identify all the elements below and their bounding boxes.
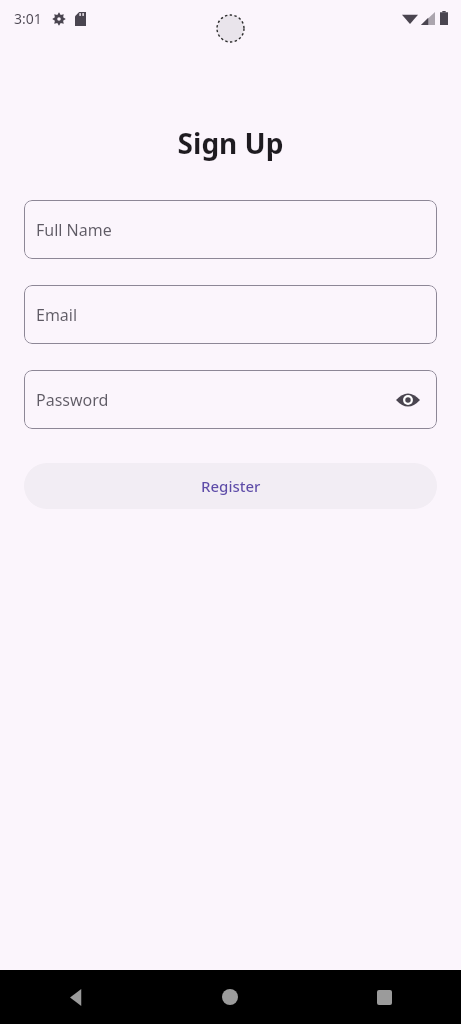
button[interactable]: Back [0,970,153,1024]
button[interactable]: Password [24,370,437,429]
button[interactable]: Email [24,285,437,344]
button[interactable]: Register [24,463,437,509]
button[interactable]: Recent apps [307,970,461,1024]
button[interactable]: Full Name [24,200,437,259]
staticText: Register [201,476,261,496]
staticText: Email [36,304,78,326]
button[interactable]: Home [153,970,307,1024]
staticText: Password [36,389,109,411]
button[interactable]: Show password [395,387,421,413]
staticText: 3:01 [14,9,42,28]
staticText: Full Name [36,219,112,241]
staticText: Sign Up [0,124,461,162]
